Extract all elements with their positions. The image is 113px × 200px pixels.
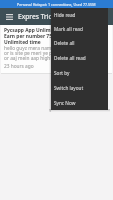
button[interactable]: Delete all: [51, 36, 108, 50]
staticText: Delete all: [54, 40, 75, 46]
button[interactable]: Navigation menu: [0, 8, 18, 25]
staticText: Pycsapp App Unlimited Earn per number 75…: [4, 27, 61, 45]
button[interactable]: Hide read: [51, 8, 108, 22]
staticText: Sync Now: [54, 100, 76, 106]
button[interactable]: Sort by: [51, 65, 108, 80]
button[interactable]: Delete all read: [51, 50, 108, 65]
button[interactable]: Switch layout: [51, 80, 108, 95]
button[interactable]: Mark all read: [51, 22, 108, 36]
staticText: Expres Tric: [18, 12, 52, 21]
staticText: Delete all read: [54, 55, 86, 61]
staticText: Mark all read: [54, 26, 83, 32]
staticText: Personal Hotspot: 1 connections, Used 77…: [17, 2, 96, 7]
staticText: 23 hours ago: [4, 63, 34, 70]
button[interactable]: Pycsapp App Unlimited Earn per number 75…: [1, 25, 112, 73]
staticText: Hide read: [54, 12, 76, 18]
button[interactable]: Sync Now: [51, 95, 108, 110]
staticText: hello guyz mera name hai ye or is site p…: [4, 45, 69, 62]
staticText: Switch layout: [54, 85, 84, 91]
staticText: Sort by: [54, 70, 70, 76]
